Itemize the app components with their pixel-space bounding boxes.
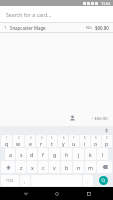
button[interactable]: g [49, 148, 60, 160]
staticText: ~ $60.90 [91, 116, 108, 122]
button[interactable]: 3 [25, 135, 35, 147]
button[interactable]: Back [19, 187, 32, 200]
staticText: Search for a card... [6, 11, 52, 18]
staticText: c [42, 164, 45, 171]
staticText: NG [86, 25, 92, 30]
staticText: y [62, 140, 65, 147]
button[interactable]: 0 [102, 135, 112, 147]
staticText: . [87, 178, 89, 184]
staticText: 11:04 [101, 1, 111, 6]
staticText: j [78, 151, 80, 158]
staticText: l [102, 151, 104, 158]
staticText: t [51, 140, 53, 147]
staticText: a [9, 151, 12, 158]
button[interactable]: v [49, 161, 60, 173]
button[interactable]: b [61, 161, 72, 173]
button[interactable]: d [27, 148, 37, 160]
staticText: $60.90 [95, 25, 109, 31]
staticText: p [105, 140, 109, 147]
button[interactable]: Search for a card... [0, 6, 113, 22]
staticText: n [77, 164, 81, 171]
staticText: v [53, 164, 56, 171]
button[interactable]: 1 [1, 135, 12, 147]
staticText: m [88, 164, 93, 171]
staticText: d [30, 151, 34, 158]
button[interactable]: a [5, 148, 15, 160]
button[interactable]: , [20, 175, 30, 186]
staticText: u [72, 140, 76, 147]
staticText: w [16, 140, 21, 147]
staticText: b [65, 164, 69, 171]
staticText: Snapcaster Mage [10, 25, 46, 31]
button[interactable]: m [85, 161, 96, 173]
staticText: g [53, 151, 57, 158]
button[interactable]: c [38, 161, 48, 173]
button[interactable]: n [73, 161, 84, 173]
button[interactable]: x [27, 161, 37, 173]
staticText: 0 [106, 136, 108, 140]
button[interactable]: k [85, 148, 96, 160]
button[interactable]: Shift [1, 161, 15, 173]
staticText: k [89, 151, 92, 158]
staticText: 9 [95, 136, 97, 140]
staticText: 7 [73, 136, 75, 140]
staticText: z [20, 164, 23, 171]
staticText: 3 [30, 136, 32, 140]
button[interactable]: 2 [13, 135, 24, 147]
button[interactable]: 9 [91, 135, 101, 147]
staticText: r [40, 140, 43, 147]
button[interactable]: l [97, 148, 108, 160]
button[interactable]: 5 [47, 135, 57, 147]
button[interactable]: 4 [36, 135, 46, 147]
staticText: 6 [63, 136, 65, 140]
staticText: 5 [51, 136, 53, 140]
button[interactable]: Recent apps [82, 187, 95, 200]
button[interactable]: ?123 [1, 175, 19, 186]
staticText: 1 [6, 136, 8, 140]
staticText: 2 [18, 136, 20, 140]
button[interactable]: j [73, 148, 84, 160]
button[interactable]: z [16, 161, 26, 173]
button[interactable]: Voice input [104, 128, 109, 133]
staticText: x [31, 164, 34, 171]
button[interactable]: f [38, 148, 48, 160]
staticText: q [5, 140, 9, 147]
staticText: 1 [4, 25, 7, 30]
button[interactable]: Home [50, 187, 63, 200]
staticText: 4 [41, 136, 43, 140]
staticText: i [84, 140, 86, 147]
button[interactable]: . [83, 175, 93, 186]
button[interactable]: Account [68, 114, 77, 123]
staticText: e [29, 140, 32, 147]
button[interactable]: 8 [80, 135, 90, 147]
staticText: 8 [84, 136, 86, 140]
staticText: s [20, 151, 23, 158]
staticText: f [42, 151, 44, 158]
staticText: , [24, 178, 26, 184]
button[interactable]: 1 [0, 23, 113, 32]
button[interactable]: 6 [58, 135, 68, 147]
button[interactable]: Backspace [97, 161, 112, 173]
button[interactable]: s [16, 148, 26, 160]
button[interactable]: 7 [69, 135, 79, 147]
staticText: ?123 [6, 178, 14, 183]
staticText: h [65, 151, 69, 158]
button[interactable]: Search [94, 175, 112, 186]
staticText: o [94, 140, 98, 147]
button[interactable]: h [61, 148, 72, 160]
